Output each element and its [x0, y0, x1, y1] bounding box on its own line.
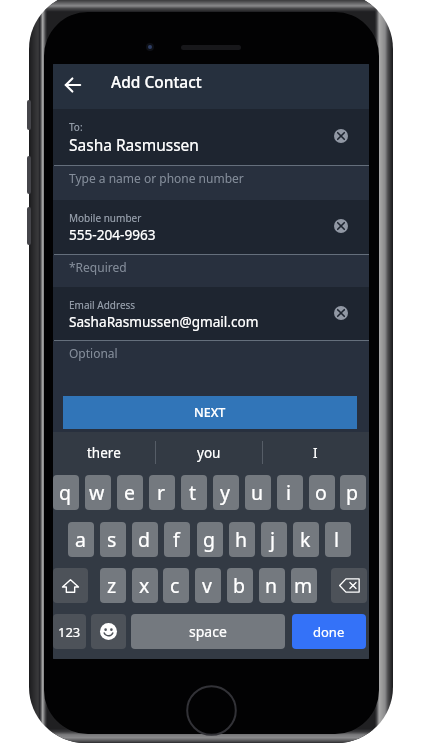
staticText: z	[107, 572, 117, 599]
staticText: space	[189, 622, 227, 641]
staticText: 123	[58, 623, 81, 641]
staticText: done	[313, 623, 345, 641]
staticText: w	[89, 479, 105, 506]
button[interactable]: I	[262, 432, 369, 475]
staticText: 555-204-9963	[69, 225, 156, 244]
staticText: e	[124, 479, 135, 506]
staticText: SashaRasmussen@gmail.com	[69, 312, 259, 331]
button[interactable]: *Required	[53, 255, 369, 288]
button[interactable]: Mobile number	[53, 200, 369, 255]
button[interactable]: n	[259, 568, 285, 603]
button[interactable]: w	[85, 475, 111, 510]
staticText: t	[189, 479, 197, 506]
staticText: u	[251, 479, 264, 506]
button[interactable]: z	[100, 568, 126, 603]
staticText: n	[265, 572, 278, 599]
button[interactable]: h	[229, 522, 255, 557]
button[interactable]: i	[277, 475, 303, 510]
button[interactable]: done	[292, 614, 366, 649]
staticText: d	[138, 526, 150, 553]
button[interactable]: Backspace	[331, 568, 367, 603]
staticText: Sasha Rasmussen	[69, 134, 199, 155]
staticText: q	[59, 479, 71, 506]
staticText: *Required	[69, 259, 127, 275]
button[interactable]: NEXT	[63, 396, 357, 429]
button[interactable]: Clear	[334, 219, 349, 234]
staticText: h	[235, 526, 248, 553]
staticText: g	[203, 526, 215, 553]
button[interactable]: Email Address	[53, 287, 369, 341]
staticText: Mobile number	[69, 211, 142, 225]
staticText: x	[139, 572, 150, 599]
button[interactable]: To:	[53, 109, 369, 166]
button[interactable]: you	[155, 432, 262, 475]
staticText: l	[334, 526, 340, 553]
button[interactable]: g	[197, 522, 223, 557]
button[interactable]: d	[132, 522, 158, 557]
staticText: j	[270, 526, 276, 553]
button[interactable]: space	[131, 614, 285, 649]
staticText: f	[173, 526, 180, 553]
button[interactable]: f	[164, 522, 190, 557]
staticText: NEXT	[194, 404, 226, 421]
staticText: o	[315, 479, 327, 506]
button[interactable]: Optional	[53, 341, 369, 374]
button[interactable]: o	[309, 475, 335, 510]
button[interactable]: there	[53, 432, 155, 475]
staticText: p	[346, 479, 358, 506]
staticText: r	[157, 479, 166, 506]
staticText: To:	[69, 120, 83, 134]
staticText: a	[75, 526, 86, 553]
button[interactable]: u	[245, 475, 271, 510]
button[interactable]: l	[325, 522, 351, 557]
button[interactable]: x	[132, 568, 158, 603]
staticText: c	[170, 572, 180, 599]
staticText: y	[220, 479, 230, 506]
button[interactable]: a	[68, 522, 94, 557]
button[interactable]: Type a name or phone number	[53, 166, 369, 199]
button[interactable]: Back	[55, 67, 91, 103]
staticText: there	[87, 444, 121, 462]
staticText: Add Contact	[111, 71, 202, 92]
staticText: b	[233, 572, 245, 599]
button[interactable]: Shift	[53, 568, 88, 603]
button[interactable]: p	[340, 475, 366, 510]
button[interactable]: e	[117, 475, 143, 510]
button[interactable]: k	[293, 522, 319, 557]
button[interactable]: b	[227, 568, 253, 603]
button[interactable]: 123	[53, 614, 86, 649]
button[interactable]: c	[163, 568, 189, 603]
button[interactable]: j	[261, 522, 287, 557]
staticText: m	[294, 572, 313, 599]
button[interactable]: r	[149, 475, 175, 510]
button[interactable]: q	[53, 475, 79, 510]
staticText: k	[300, 526, 311, 553]
button[interactable]: Clear	[334, 306, 349, 321]
staticText: Optional	[69, 345, 118, 361]
staticText: i	[286, 479, 292, 506]
button[interactable]: v	[195, 568, 221, 603]
button[interactable]: s	[100, 522, 126, 557]
button[interactable]: t	[181, 475, 207, 510]
button[interactable]: m	[291, 568, 317, 603]
staticText: Type a name or phone number	[69, 170, 244, 186]
staticText: s	[107, 526, 117, 553]
staticText: Email Address	[69, 298, 136, 312]
button[interactable]: Clear	[334, 129, 349, 144]
button[interactable]: y	[213, 475, 239, 510]
staticText: I	[313, 444, 318, 462]
staticText: you	[197, 444, 221, 462]
staticText: v	[202, 572, 212, 599]
button[interactable]: Emoji	[91, 614, 126, 649]
